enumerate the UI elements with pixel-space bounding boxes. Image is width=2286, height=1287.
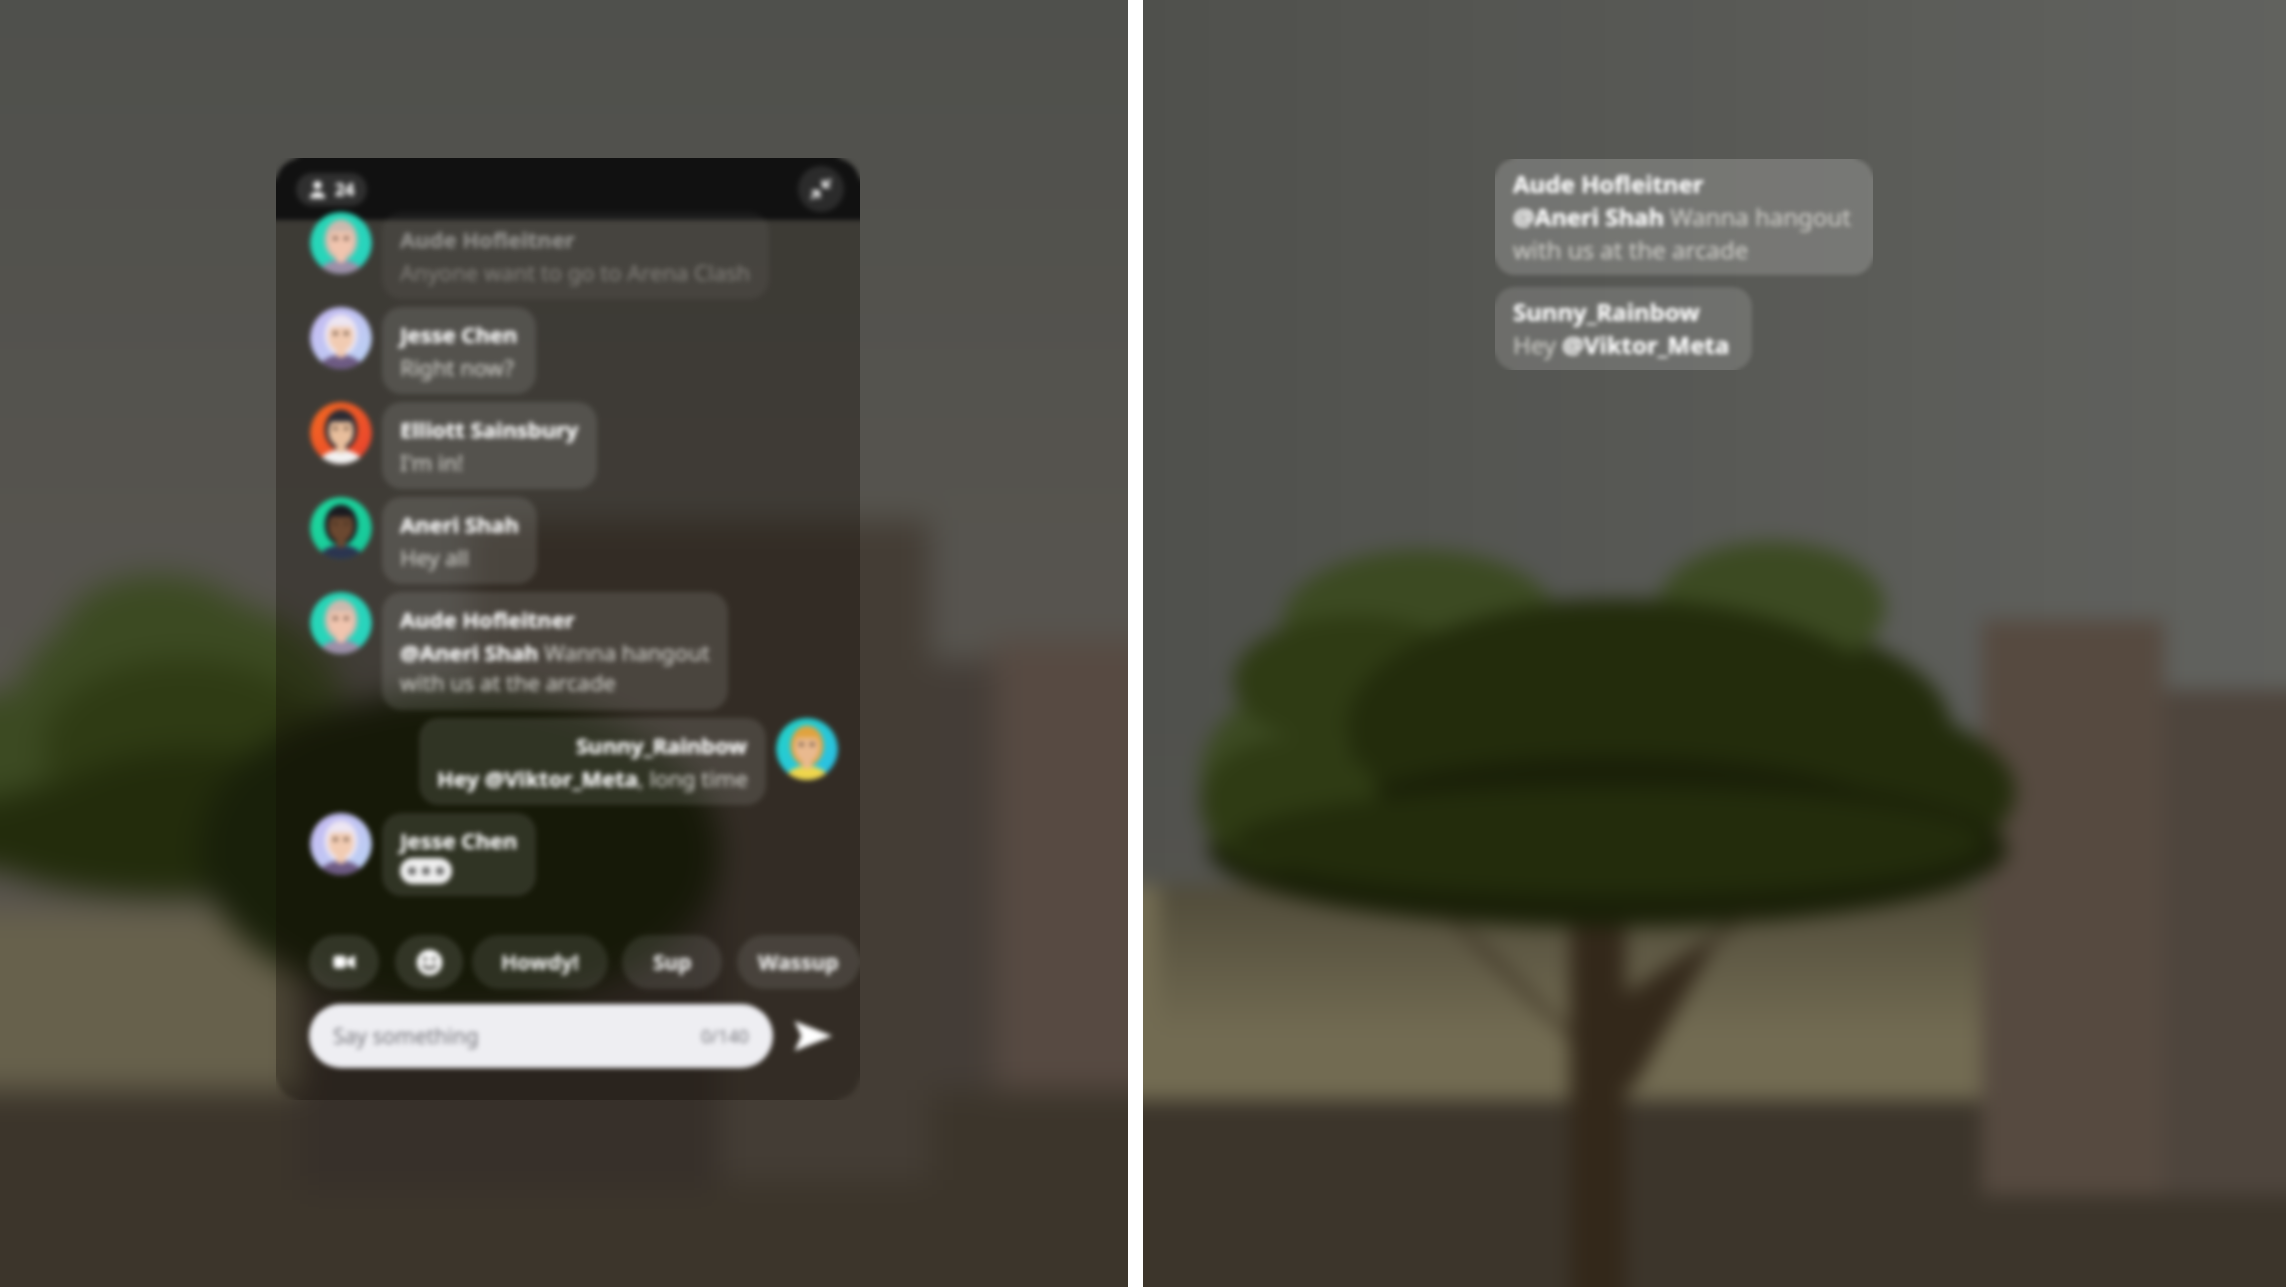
- staticText: Aude Hofleitner: [1513, 167, 1704, 200]
- button[interactable]: Sunny_Rainbow: [1495, 287, 1752, 370]
- button[interactable]: Profile photo: [310, 813, 372, 875]
- staticText: Hey @Viktor_Meta: [1513, 328, 1730, 361]
- button[interactable]: Wassup: [737, 935, 860, 989]
- button[interactable]: Emoji: [395, 935, 463, 989]
- staticText: Sunny_Rainbow: [576, 730, 748, 760]
- button[interactable]: Profile photo: [310, 402, 372, 464]
- staticText: Howdy!: [501, 948, 579, 977]
- staticText: Sup: [653, 948, 692, 977]
- button[interactable]: Aude Hofleitner: [382, 592, 728, 710]
- button[interactable]: Aude Hofleitner: [382, 212, 769, 299]
- button[interactable]: Send media: [309, 935, 379, 989]
- staticText: with us at the arcade: [1513, 233, 1749, 266]
- staticText: Hey @Viktor_Meta, long time: [437, 763, 748, 793]
- button[interactable]: Send: [787, 1010, 839, 1062]
- button[interactable]: Profile photo: [310, 497, 372, 559]
- staticText: Wassup: [758, 948, 839, 977]
- staticText: @Aneri Shah Wanna hangout with us at the…: [400, 637, 710, 698]
- button[interactable]: Profile photo: [776, 718, 838, 780]
- staticText: Aneri Shah: [400, 509, 519, 539]
- button[interactable]: Aneri Shah: [382, 497, 537, 584]
- staticText: 24: [335, 178, 355, 201]
- button[interactable]: Sup: [622, 935, 722, 989]
- staticText: Say something: [333, 1022, 479, 1051]
- staticText: Hey all: [400, 542, 469, 572]
- staticText: Aude Hofleitner: [400, 604, 575, 634]
- staticText: @Aneri Shah Wanna hangout: [1513, 200, 1851, 233]
- button[interactable]: Sunny_Rainbow: [419, 718, 766, 805]
- button[interactable]: Jesse Chen: [382, 307, 536, 394]
- button[interactable]: Collapse: [798, 166, 844, 212]
- staticText: 0/140: [701, 1024, 749, 1049]
- staticText: Anyone want to go to Arena Clash: [400, 257, 751, 287]
- staticText: I'm in!: [400, 447, 464, 477]
- button[interactable]: Profile photo: [310, 307, 372, 369]
- button[interactable]: Aude Hofleitner: [1495, 159, 1873, 275]
- button[interactable]: Profile photo: [310, 212, 372, 274]
- button[interactable]: 24 participants: [296, 173, 367, 206]
- button[interactable]: Profile photo: [310, 592, 372, 654]
- staticText: Right now?: [400, 352, 514, 382]
- button[interactable]: Say something: [309, 1004, 773, 1068]
- staticText: Aude Hofleitner: [400, 224, 575, 254]
- button[interactable]: Jesse Chen: [382, 813, 536, 896]
- staticText: Sunny_Rainbow: [1513, 295, 1700, 328]
- staticText: Jesse Chen: [400, 319, 518, 349]
- staticText: Elliott Sainsbury: [400, 414, 579, 444]
- button[interactable]: Howdy!: [472, 935, 608, 989]
- staticText: Jesse Chen: [400, 825, 518, 855]
- button[interactable]: Elliott Sainsbury: [382, 402, 597, 489]
